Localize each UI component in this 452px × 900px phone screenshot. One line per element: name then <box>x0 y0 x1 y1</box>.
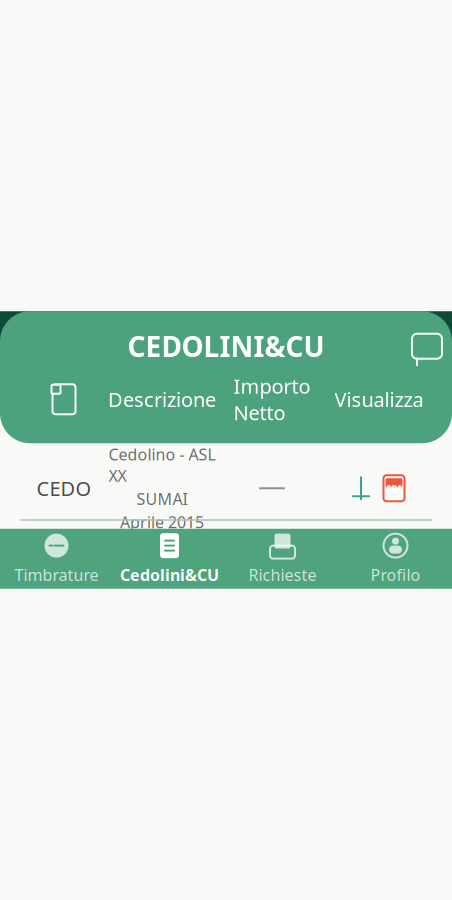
button[interactable]: Timbrature <box>0 524 113 593</box>
button[interactable]: Profilo <box>339 524 452 593</box>
staticText: Aprile 2015 <box>120 511 204 533</box>
staticText: Richieste <box>248 564 316 585</box>
staticText: Cedolini&CU <box>120 564 219 585</box>
staticText: Profilo <box>370 564 420 585</box>
staticText: Visualizza <box>334 386 423 413</box>
button[interactable]: Richieste <box>226 524 339 593</box>
staticText: Importo Netto <box>233 373 310 426</box>
staticText: CEDO <box>36 475 91 502</box>
staticText: SUMAI <box>136 488 187 509</box>
button[interactable]: Cedolini&CU <box>113 524 226 593</box>
staticText: CEDOLINI&CU <box>127 328 324 365</box>
button[interactable]: CEDO <box>0 457 452 521</box>
staticText: Descrizione <box>108 386 216 413</box>
staticText: PDF <box>386 483 401 493</box>
button[interactable]: Messaggi <box>402 327 452 365</box>
staticText: Cedolino - ASL XX <box>108 444 215 486</box>
staticText: Timbrature <box>14 564 98 585</box>
